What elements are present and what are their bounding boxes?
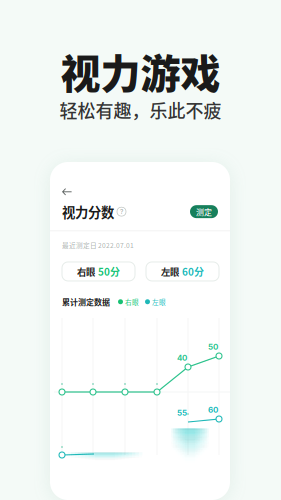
staticText: 60	[208, 405, 218, 415]
staticText: 视力分数	[62, 202, 114, 221]
staticText: 55	[177, 408, 187, 418]
staticText: 最近测定日 2022.07.01	[62, 240, 134, 250]
button[interactable]: 左眼	[146, 262, 219, 281]
staticText: ?	[120, 208, 123, 216]
staticText: 右眼	[77, 265, 95, 278]
staticText: 60分	[182, 264, 204, 279]
staticText: 右眼	[125, 297, 139, 307]
staticText: 视力游戏	[60, 42, 220, 100]
staticText: 累计测定数据	[62, 296, 110, 308]
staticText: 50分	[98, 264, 120, 279]
staticText: 左眼	[161, 265, 179, 278]
staticText: 左眼	[152, 297, 166, 307]
button[interactable]: Back	[50, 162, 81, 202]
button[interactable]: 右眼	[62, 262, 135, 281]
staticText: 测定	[196, 206, 212, 217]
staticText: 40	[177, 353, 187, 363]
staticText: 50	[208, 342, 218, 352]
staticText: 轻松有趣，乐此不疲	[59, 97, 221, 123]
button[interactable]: 测定	[190, 205, 218, 218]
